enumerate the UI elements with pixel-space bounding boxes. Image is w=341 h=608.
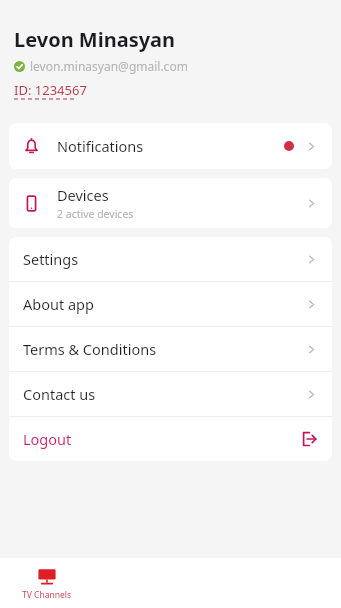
staticText: Contact us xyxy=(23,384,96,404)
staticText: levon.minasyan@gmail.com xyxy=(30,58,188,74)
staticText: Devices xyxy=(57,185,109,205)
button[interactable]: TV Channels xyxy=(22,566,71,601)
button[interactable]: Devices xyxy=(9,178,332,228)
button[interactable]: Terms & Conditions xyxy=(9,327,332,371)
other: Logout xyxy=(300,430,318,448)
other: Devices xyxy=(23,195,40,212)
button[interactable]: Settings xyxy=(9,237,332,281)
staticText: Terms & Conditions xyxy=(23,339,157,359)
staticText: TV Channels xyxy=(22,589,71,601)
button[interactable]: Logout xyxy=(9,417,332,461)
staticText: Levon Minasyan xyxy=(14,26,176,53)
staticText: ID: 1234567 xyxy=(14,81,87,99)
staticText: About app xyxy=(23,294,94,314)
button[interactable]: About app xyxy=(9,282,332,326)
staticText: Notifications xyxy=(57,136,144,156)
staticText: Settings xyxy=(23,249,79,269)
staticText: Logout xyxy=(23,429,72,449)
button[interactable]: ID: 1234567 xyxy=(14,81,87,101)
button[interactable]: Contact us xyxy=(9,372,332,416)
staticText: 2 active devices xyxy=(57,207,134,221)
other: Notifications xyxy=(23,138,40,155)
button[interactable]: Notifications xyxy=(9,123,332,169)
